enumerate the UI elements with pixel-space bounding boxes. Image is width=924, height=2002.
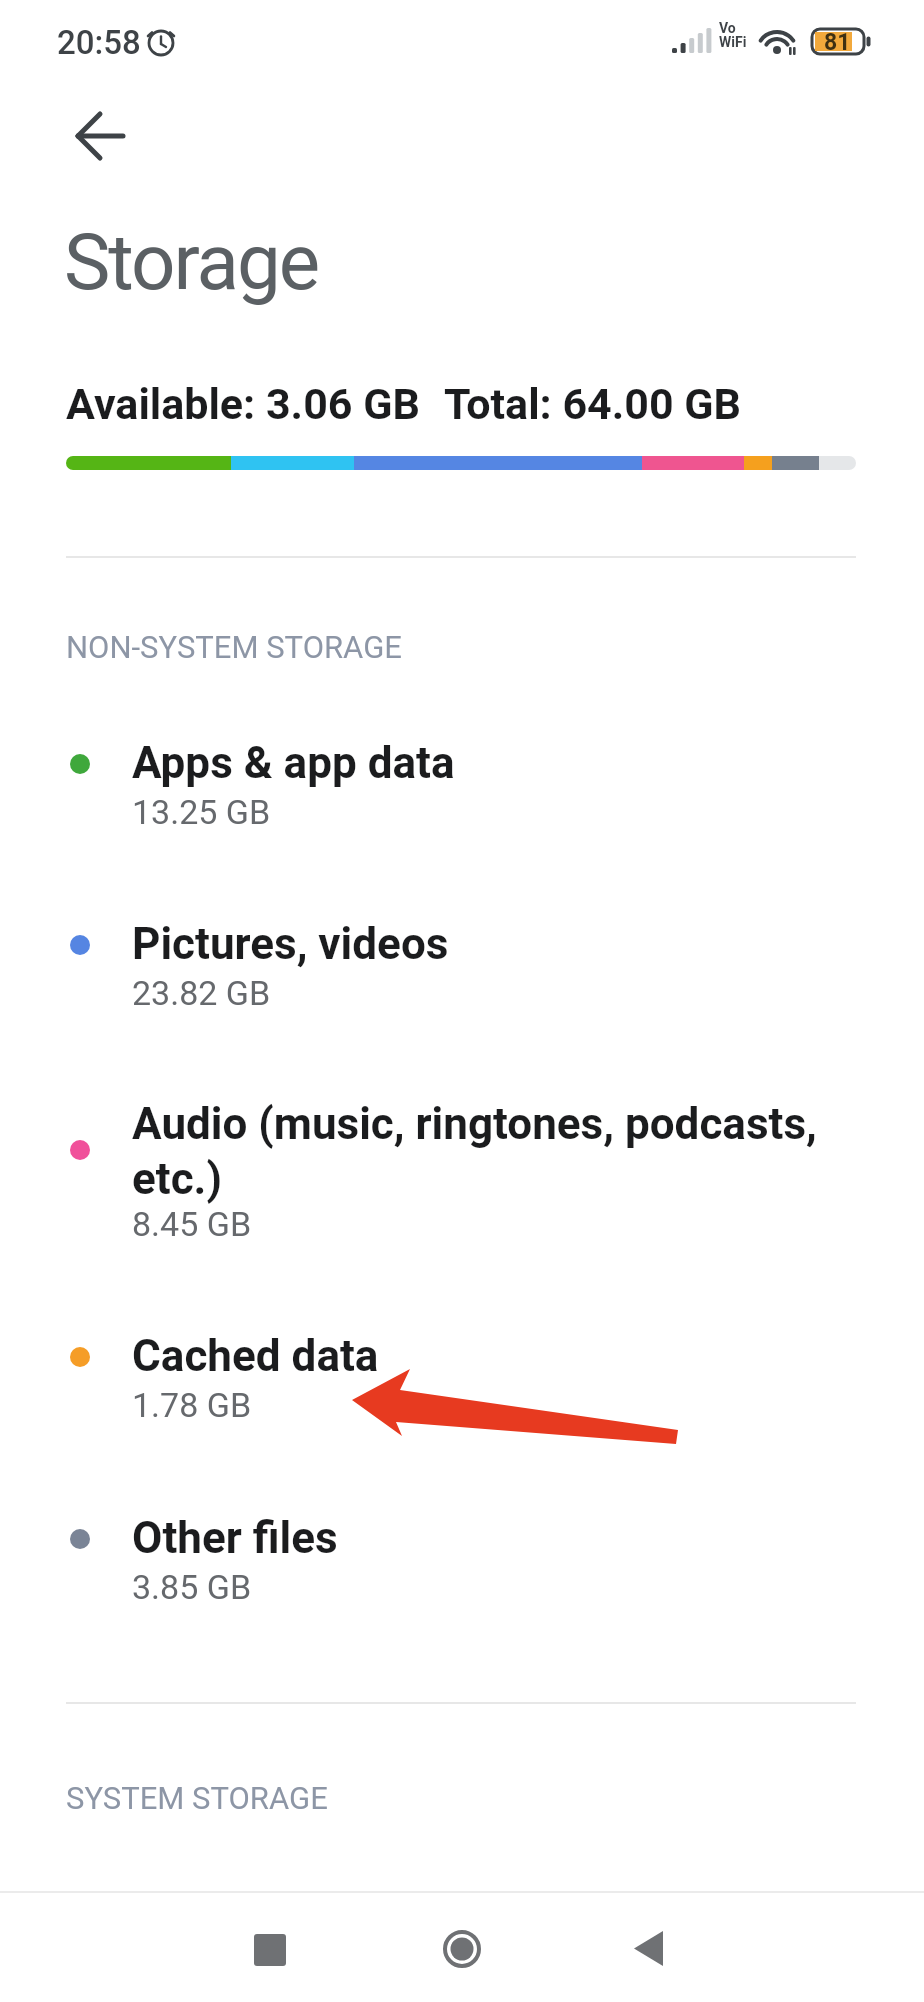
button[interactable]: Pictures, videos [40, 894, 870, 1034]
staticText: Storage [64, 217, 319, 308]
staticText: Vo WiFi [719, 20, 747, 51]
staticText: Other files [132, 1512, 338, 1564]
staticText: 23.82 GB [132, 973, 271, 1013]
button[interactable] [234, 1929, 306, 2001]
staticText: 8.45 GB [132, 1204, 252, 1244]
staticText: Apps & app data [132, 737, 455, 789]
staticText: Available: 3.06 GB [66, 379, 420, 429]
staticText: NON-SYSTEM STORAGE [66, 629, 402, 665]
button[interactable] [614, 1929, 686, 2001]
staticText: 81 [824, 29, 851, 56]
button[interactable]: Audio (music, ringtones, podcasts, etc.) [40, 1074, 870, 1270]
staticText: Pictures, videos [132, 918, 449, 970]
staticText: Audio (music, ringtones, podcasts, etc.) [132, 1098, 817, 1205]
staticText: 13.25 GB [132, 792, 271, 832]
staticText: SYSTEM STORAGE [66, 1780, 328, 1816]
button[interactable]: Cached data [40, 1306, 870, 1446]
staticText: 20:58 [57, 23, 141, 62]
button[interactable]: Apps & app data [40, 713, 870, 853]
button[interactable] [426, 1929, 498, 2001]
staticText: 1.78 GB [132, 1385, 252, 1425]
staticText: Total: 64.00 GB [444, 379, 742, 429]
staticText: 3.85 GB [132, 1567, 252, 1607]
button[interactable]: Other files [40, 1488, 870, 1628]
staticText: Cached data [132, 1330, 379, 1382]
button[interactable] [66, 102, 134, 170]
